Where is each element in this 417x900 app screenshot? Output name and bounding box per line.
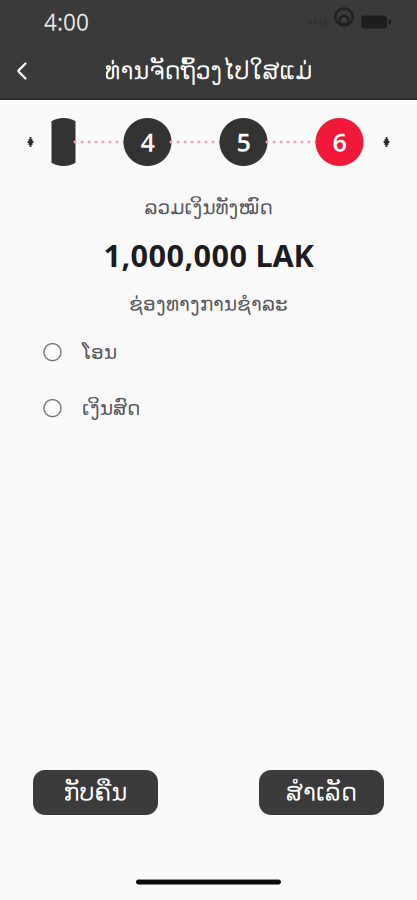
staticText: ສຳເລັດ bbox=[286, 779, 357, 806]
staticText: ທ່ານຈັດຖົ້ວງໄປໃສແມ່ bbox=[104, 57, 312, 85]
staticText: 6 bbox=[332, 125, 346, 159]
button[interactable]: ເງິນສົດ bbox=[0, 393, 417, 423]
staticText: 1,000,000 LAK bbox=[103, 235, 313, 275]
staticText: ເງິນສົດ bbox=[82, 397, 140, 419]
staticText: 4:00 bbox=[44, 7, 89, 37]
button[interactable]: 6 bbox=[315, 118, 363, 166]
button[interactable]: Previous steps bbox=[19, 127, 41, 157]
button[interactable]: Next steps bbox=[375, 127, 397, 157]
button[interactable]: Back bbox=[0, 44, 44, 98]
button[interactable]: ໂອນ bbox=[0, 337, 417, 367]
staticText: ກັບຄືນ bbox=[63, 779, 127, 806]
staticText: ລວມເງິນທັງໝົດ bbox=[144, 196, 272, 219]
staticText: ໂອນ bbox=[82, 341, 117, 363]
button[interactable]: ສຳເລັດ bbox=[259, 770, 384, 815]
staticText: ຊ່ອງທາງການຊຳລະ bbox=[129, 292, 288, 315]
staticText: 4 bbox=[140, 125, 154, 159]
button[interactable]: 5 bbox=[219, 118, 267, 166]
staticText: 5 bbox=[236, 125, 250, 159]
button[interactable]: ກັບຄືນ bbox=[33, 770, 158, 815]
button[interactable]: 4 bbox=[123, 118, 171, 166]
